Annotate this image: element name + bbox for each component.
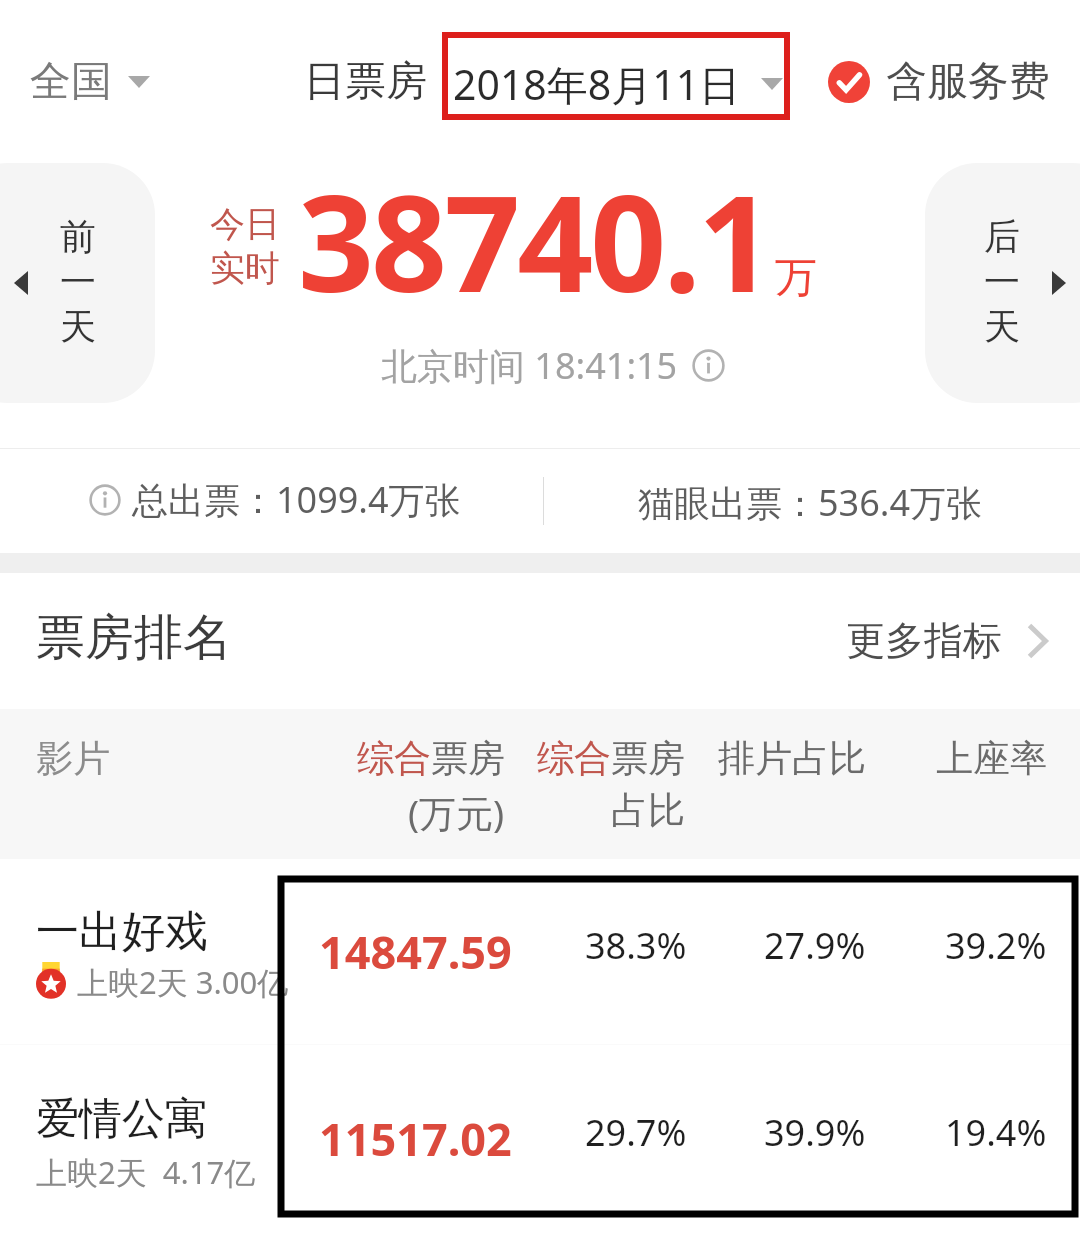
- button[interactable]: 综合: [537, 735, 685, 829]
- button[interactable]: 上座率: [936, 735, 1047, 782]
- staticText: 38.3%: [585, 921, 687, 970]
- staticText: 爱情公寓: [36, 1092, 208, 1146]
- staticText: 猫眼出票：536.4万张: [638, 478, 983, 527]
- staticText: 票房: [611, 735, 685, 782]
- staticText: 影片: [36, 735, 110, 782]
- staticText: (万元): [408, 787, 505, 838]
- staticText: 天: [984, 304, 1020, 349]
- staticText: 27.9%: [764, 921, 866, 970]
- button[interactable]: 一出好戏: [0, 859, 1080, 1046]
- staticText: 万: [775, 252, 817, 305]
- staticText: 一出好戏: [36, 905, 208, 959]
- button[interactable]: 爱情公寓: [0, 1046, 1080, 1245]
- staticText: 占比: [611, 787, 685, 834]
- staticText: 38740.1: [298, 150, 771, 331]
- button[interactable]: 含服务费: [828, 56, 1050, 108]
- staticText: 上映2天 3.00亿: [77, 961, 289, 1003]
- staticText: 一: [60, 259, 96, 304]
- staticText: 更多指标: [846, 616, 1002, 665]
- staticText: 后: [984, 214, 1020, 259]
- button[interactable]: 排片占比: [718, 735, 866, 782]
- staticText: 含服务费: [886, 56, 1050, 108]
- staticText: 2018年8月11日: [453, 56, 741, 112]
- staticText: 19.4%: [945, 1108, 1047, 1157]
- staticText: 全国: [30, 56, 112, 108]
- staticText: 票房排名: [36, 607, 232, 669]
- staticText: 综合: [357, 735, 431, 782]
- staticText: 一: [984, 259, 1020, 304]
- staticText: 14847.59: [319, 921, 512, 982]
- staticText: 日票房: [304, 56, 427, 108]
- staticText: 11517.02: [319, 1108, 512, 1169]
- button[interactable]: 前一天: [0, 163, 155, 403]
- button[interactable]: 后一天: [925, 163, 1080, 403]
- button[interactable]: 全国: [30, 56, 150, 108]
- staticText: 票房: [431, 735, 505, 782]
- staticText: 北京时间 18:41:15: [381, 341, 678, 390]
- staticText: 综合: [537, 735, 611, 782]
- staticText: 39.2%: [945, 921, 1047, 970]
- staticText: 天: [60, 304, 96, 349]
- staticText: 39.9%: [764, 1108, 866, 1157]
- button[interactable]: 综合: [357, 735, 505, 833]
- staticText: 上座率: [936, 735, 1047, 782]
- other: 后一天: [1052, 271, 1066, 295]
- staticText: 29.7%: [585, 1108, 687, 1157]
- other: 前一天: [14, 271, 28, 295]
- staticText: 总出票：1099.4万张: [132, 475, 461, 524]
- button[interactable]: 2018年8月11日: [453, 56, 783, 112]
- staticText: 今日: [210, 202, 280, 246]
- staticText: 实时: [210, 246, 280, 290]
- button[interactable]: 更多指标: [846, 616, 1048, 665]
- staticText: 排片占比: [718, 735, 866, 782]
- staticText: 前: [60, 214, 96, 259]
- staticText: 上映2天 4.17亿: [36, 1151, 256, 1193]
